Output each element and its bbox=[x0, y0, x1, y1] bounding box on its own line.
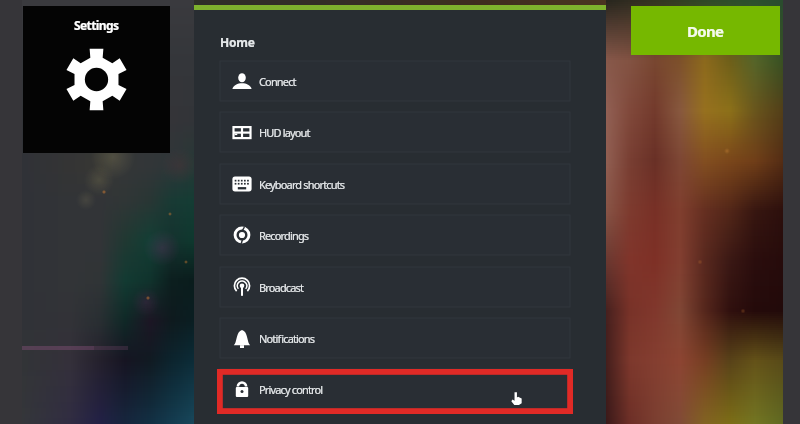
button[interactable]: Notifications bbox=[220, 318, 570, 358]
other: Pointer bbox=[511, 392, 522, 405]
staticText: HUD layout bbox=[259, 125, 310, 140]
staticText: Connect bbox=[259, 74, 296, 89]
button[interactable]: HUD layout bbox=[220, 112, 570, 152]
staticText: Keyboard shortcuts bbox=[259, 177, 345, 192]
staticText: Home bbox=[220, 34, 255, 50]
staticText: Recordings bbox=[259, 228, 309, 243]
button[interactable]: Privacy control bbox=[220, 369, 570, 409]
staticText: Broadcast bbox=[259, 280, 304, 295]
button[interactable]: Keyboard shortcuts bbox=[220, 164, 570, 204]
button[interactable]: Recordings bbox=[220, 215, 570, 255]
button[interactable]: Settings bbox=[23, 6, 170, 153]
staticText: Done bbox=[687, 21, 724, 41]
button[interactable]: Done bbox=[631, 6, 780, 55]
button[interactable]: Broadcast bbox=[220, 267, 570, 307]
button[interactable]: Connect bbox=[220, 61, 570, 101]
staticText: Settings bbox=[74, 17, 119, 33]
staticText: Privacy control bbox=[259, 382, 323, 397]
staticText: Notifications bbox=[259, 331, 315, 346]
